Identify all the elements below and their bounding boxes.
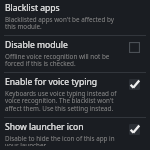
other: Disabled, unchecked [129, 42, 140, 53]
other: Enabled, checked [129, 79, 140, 90]
button[interactable]: Blacklist apps [0, 0, 150, 35]
staticText: Disable to hide the icon of this app in … [5, 134, 121, 146]
staticText: Disable module [5, 39, 68, 51]
staticText: Blacklisted apps won't be affected by th… [5, 15, 121, 31]
staticText: Keyboards use voice typing instead of vo… [5, 89, 121, 113]
staticText: Show launcher icon [5, 121, 84, 133]
staticText: Blacklist apps [5, 2, 60, 14]
button[interactable]: Show launcher icon [0, 118, 150, 150]
staticText: Enable for voice typing [5, 76, 98, 88]
button[interactable]: Enable for voice typing [0, 73, 150, 117]
other: Enabled, checked [129, 124, 140, 135]
staticText: Offline voice recognition will not be fo… [5, 52, 121, 68]
button[interactable]: Disable module [0, 36, 150, 72]
